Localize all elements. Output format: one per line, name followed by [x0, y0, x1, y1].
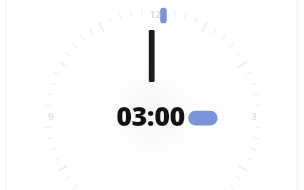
staticText: 9: [48, 110, 54, 123]
button[interactable]: 03:00: [0, 0, 304, 190]
staticText: 3: [251, 110, 257, 123]
other: Timer start marker: [0, 0, 304, 190]
staticText: 03:00: [116, 97, 185, 134]
staticText: 12: [150, 8, 161, 21]
